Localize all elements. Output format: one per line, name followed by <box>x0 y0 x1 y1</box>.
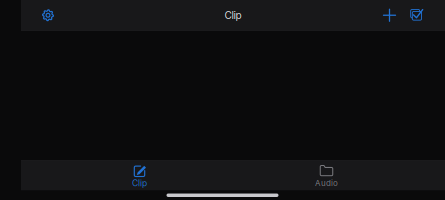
button[interactable]: New clip <box>374 0 404 30</box>
staticText: Clip <box>132 178 147 188</box>
button[interactable]: Audio <box>233 160 420 190</box>
button[interactable]: Settings <box>26 0 70 30</box>
button[interactable]: Select clips <box>401 0 431 30</box>
staticText: Audio <box>315 178 338 188</box>
button[interactable]: Clip <box>46 160 233 190</box>
staticText: Clip <box>224 9 241 21</box>
